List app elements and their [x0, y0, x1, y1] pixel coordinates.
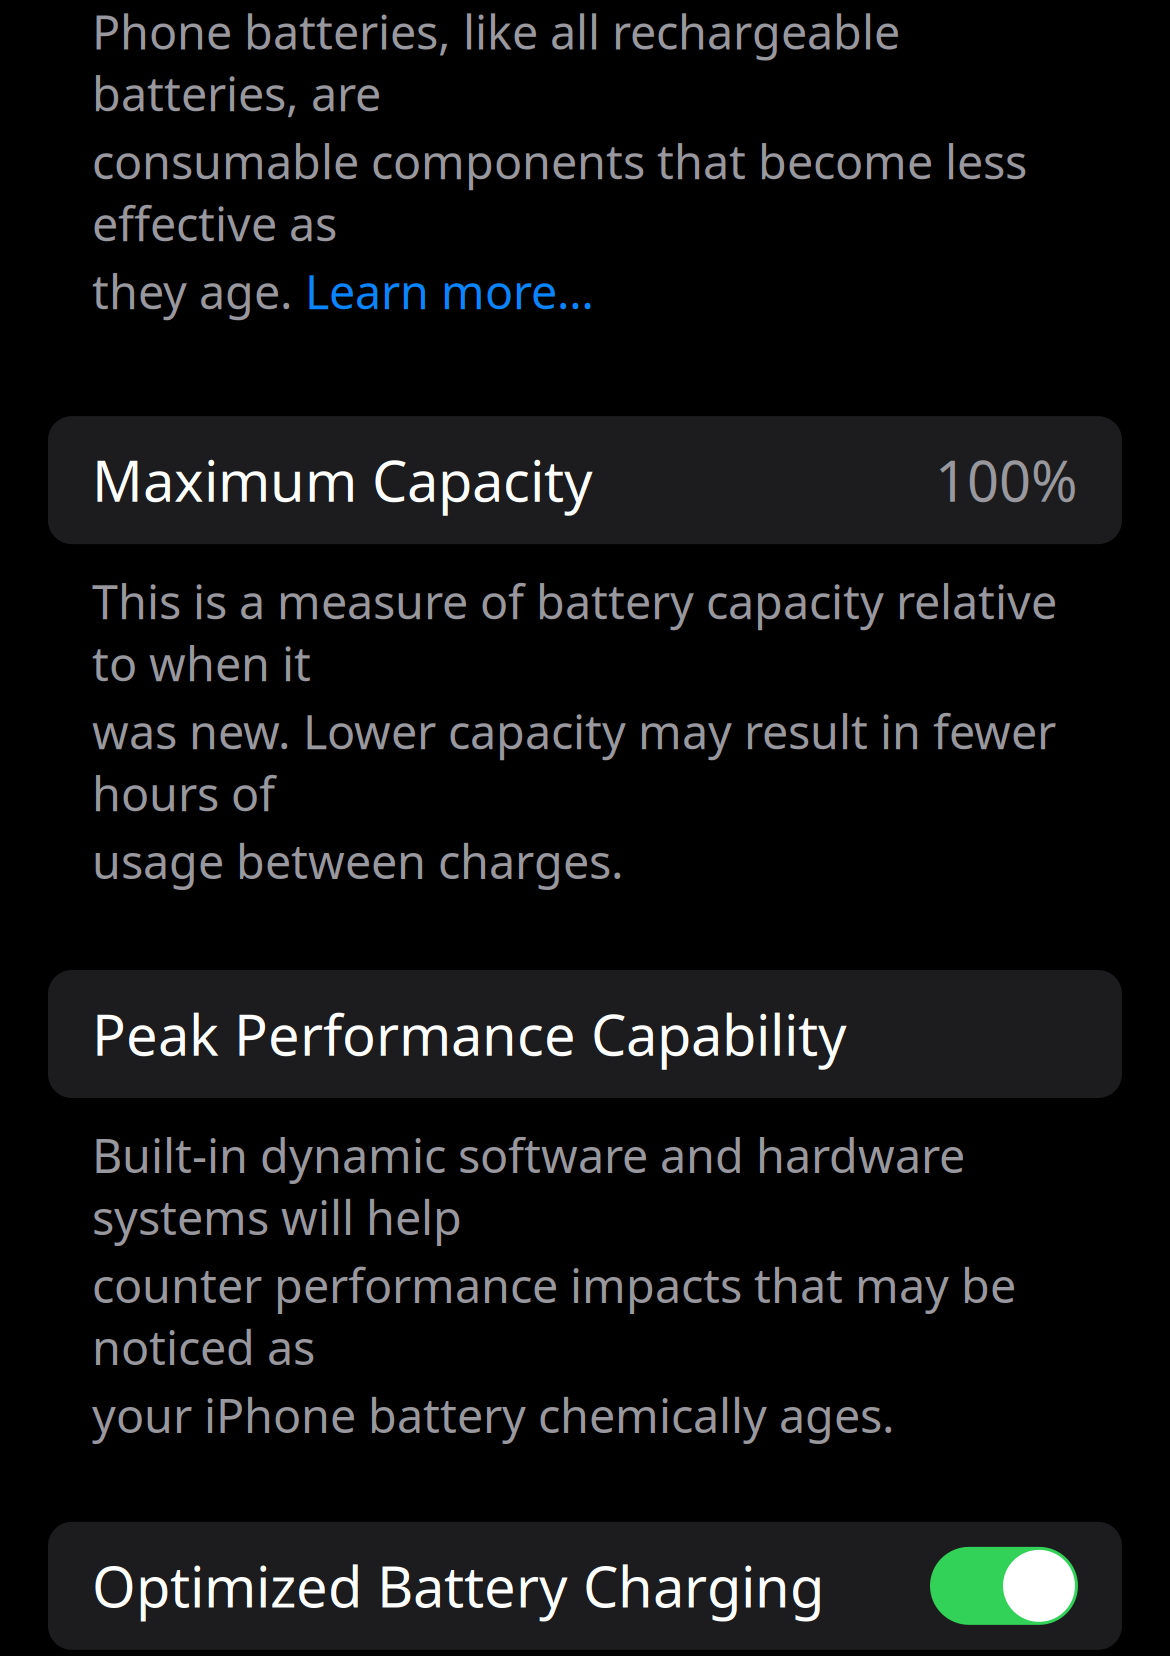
button[interactable]: Peak Performance Capability [48, 970, 1122, 1098]
staticText: counter performance impacts that may be … [92, 1254, 1016, 1378]
staticText: your iPhone battery chemically ages. [92, 1384, 895, 1446]
staticText: Phone batteries, like all rechargeable b… [92, 0, 900, 124]
staticText: Built-in dynamic software and hardware s… [92, 1124, 965, 1248]
staticText: Optimized Battery Charging [92, 1549, 824, 1623]
staticText: 100% [935, 443, 1078, 517]
staticText: This is a measure of battery capacity re… [92, 570, 1057, 694]
button[interactable]: Optimized Battery Charging [48, 1522, 1122, 1650]
button[interactable]: Learn more… [305, 260, 594, 322]
staticText: Peak Performance Capability [92, 997, 847, 1071]
staticText: was new. Lower capacity may result in fe… [92, 700, 1056, 824]
staticText: Maximum Capacity [92, 443, 593, 517]
staticText: usage between charges. [92, 830, 624, 892]
staticText: Learn more… [305, 260, 594, 322]
staticText: they age. [92, 260, 305, 322]
staticText: consumable components that become less e… [92, 130, 1027, 254]
button[interactable]: Maximum Capacity [48, 416, 1122, 544]
